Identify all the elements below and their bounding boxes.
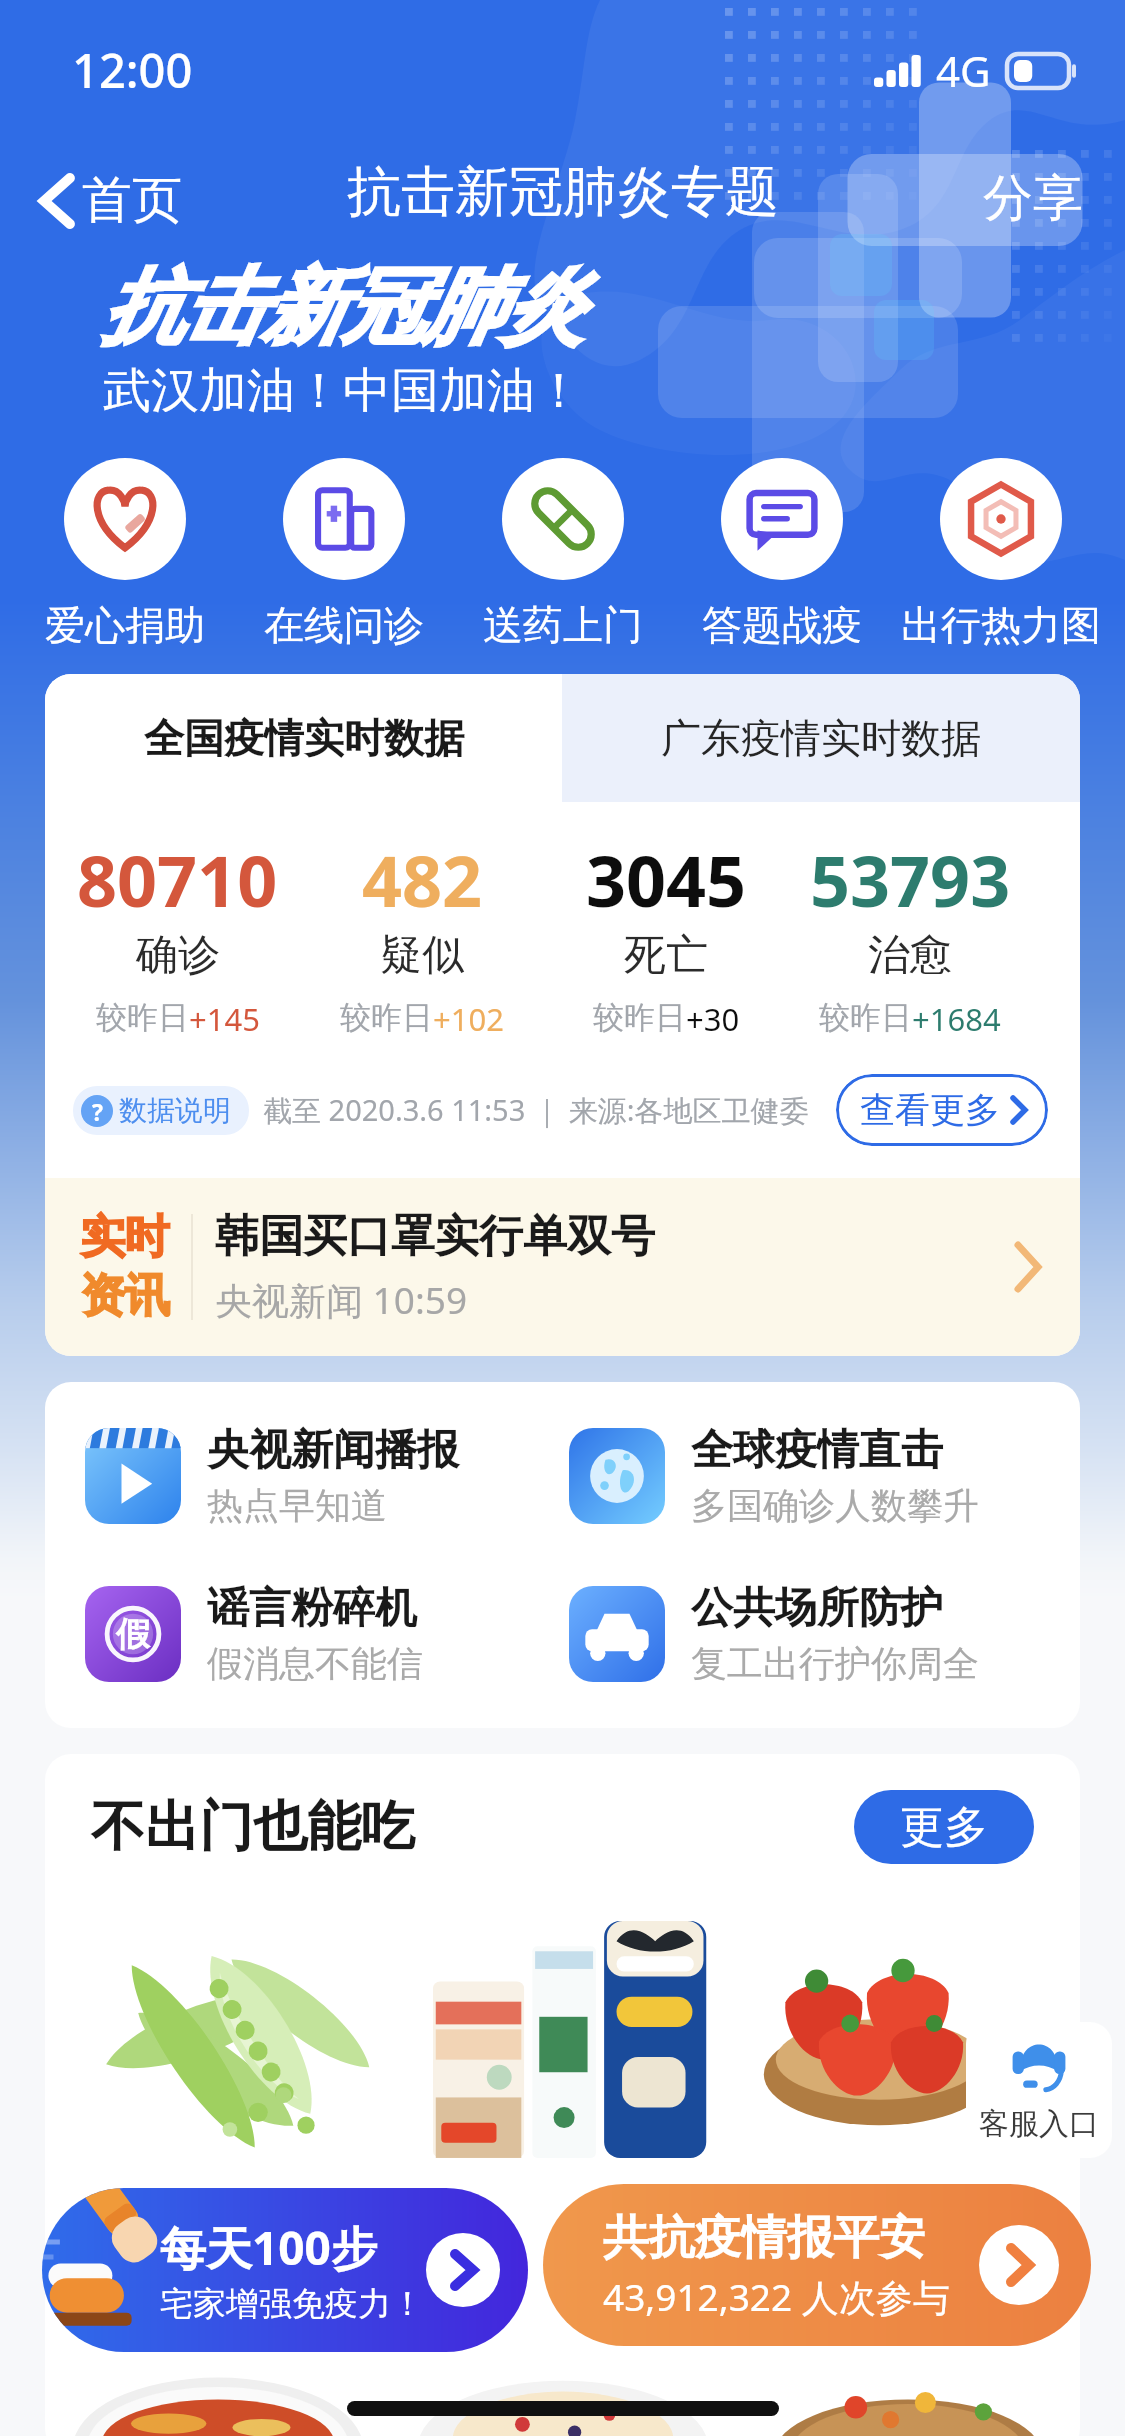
staticText: 资讯 [81,1268,169,1325]
staticText: 较昨日 [593,998,686,1037]
staticText: 广东疫情实时数据 [661,713,981,763]
staticText: 在线问诊 [264,600,424,650]
other: 进入 [979,2225,1059,2305]
staticText: 假 [116,1613,150,1656]
staticText: 3045 [586,832,747,927]
button[interactable]: 出行热力图 [891,458,1111,650]
staticText: 53793 [810,832,1011,927]
staticText: 疑似 [380,929,464,982]
button[interactable]: 广东疫情实时数据 [562,674,1080,802]
staticText: 80710 [77,832,278,927]
staticText: 宅家增强免疫力！ [160,2283,424,2325]
button[interactable]: 全球疫情直击 [569,1424,1054,1528]
staticText: 抗击新冠肺炎 [103,256,583,359]
button[interactable]: 公共场所防护 [569,1582,1054,1686]
staticText: 4G [936,42,991,99]
staticText: 首页 [82,169,182,232]
staticText: 482 [362,832,483,927]
staticText: 截至 2020.3.6 11:53 ｜ 来源:各地区卫健委 [263,1090,809,1130]
staticText: 复工出行护你周全 [691,1641,979,1686]
staticText: 央视新闻播报 [207,1424,459,1477]
staticText: 假消息不能信 [207,1641,423,1686]
staticText: 公共场所防护 [691,1582,943,1635]
button[interactable]: 实时 [45,1178,1080,1356]
button[interactable]: 送药上门 [453,458,673,650]
staticText: 爱心捐助 [45,600,205,650]
staticText: +145 [189,998,260,1040]
staticText: 答题战疫 [702,600,862,650]
button[interactable]: 分享 [953,155,1125,260]
staticText: 多国确诊人数攀升 [691,1483,979,1528]
staticText: 实时 [81,1209,169,1266]
staticText: +1684 [912,998,1001,1040]
staticText: 治愈 [868,929,952,982]
button[interactable]: 在线问诊 [234,458,454,650]
button[interactable]: 更多 [854,1790,1034,1864]
staticText: 较昨日 [340,998,433,1037]
staticText: 43,912,322 人次参与 [603,2271,950,2322]
staticText: 抗击新冠肺炎专题 [347,158,779,226]
button[interactable]: 客服入口 [966,2022,1112,2158]
button[interactable]: 首页 [0,159,202,260]
button[interactable]: ? [73,1086,249,1135]
button[interactable]: 查看更多 [836,1074,1048,1146]
staticText: 更多 [900,1800,988,1855]
staticText: 共抗疫情报平安 [603,2209,925,2267]
staticText: 送药上门 [483,600,643,650]
button[interactable]: 答题战疫 [672,458,892,650]
staticText: 分享 [983,167,1083,230]
staticText: +102 [433,998,504,1040]
staticText: 央视新闻 10:59 [215,1274,468,1325]
button[interactable]: 假 [85,1582,569,1686]
button[interactable]: 央视新闻播报 [85,1424,569,1528]
staticText: 出行热力图 [901,600,1101,650]
button[interactable]: 共抗疫情报平安 [543,2184,1091,2346]
staticText: 热点早知道 [207,1483,387,1528]
staticText: 客服入口 [979,2105,1099,2143]
button[interactable]: 每天100步 [42,2188,528,2352]
staticText: 较昨日 [819,998,912,1037]
staticText: 确诊 [136,929,220,982]
other: 进入 [426,2233,500,2307]
staticText: +30 [686,998,740,1040]
staticText: ? [92,1096,103,1127]
staticText: 数据说明 [119,1093,231,1128]
staticText: 武汉加油！中国加油！ [103,361,583,421]
staticText: 全球疫情直击 [691,1424,943,1477]
staticText: 全国疫情实时数据 [144,713,464,763]
staticText: 较昨日 [96,998,189,1037]
staticText: 每天100步 [160,2216,377,2279]
button[interactable]: 爱心捐助 [15,458,235,650]
staticText: 12:00 [72,38,193,102]
staticText: 谣言粉碎机 [207,1582,417,1635]
button[interactable]: 全国疫情实时数据 [45,674,562,802]
staticText: 不出门也能吃 [91,1793,415,1861]
staticText: 韩国买口罩实行单双号 [215,1209,655,1264]
staticText: 查看更多 [860,1088,1000,1132]
staticText: 死亡 [624,929,708,982]
